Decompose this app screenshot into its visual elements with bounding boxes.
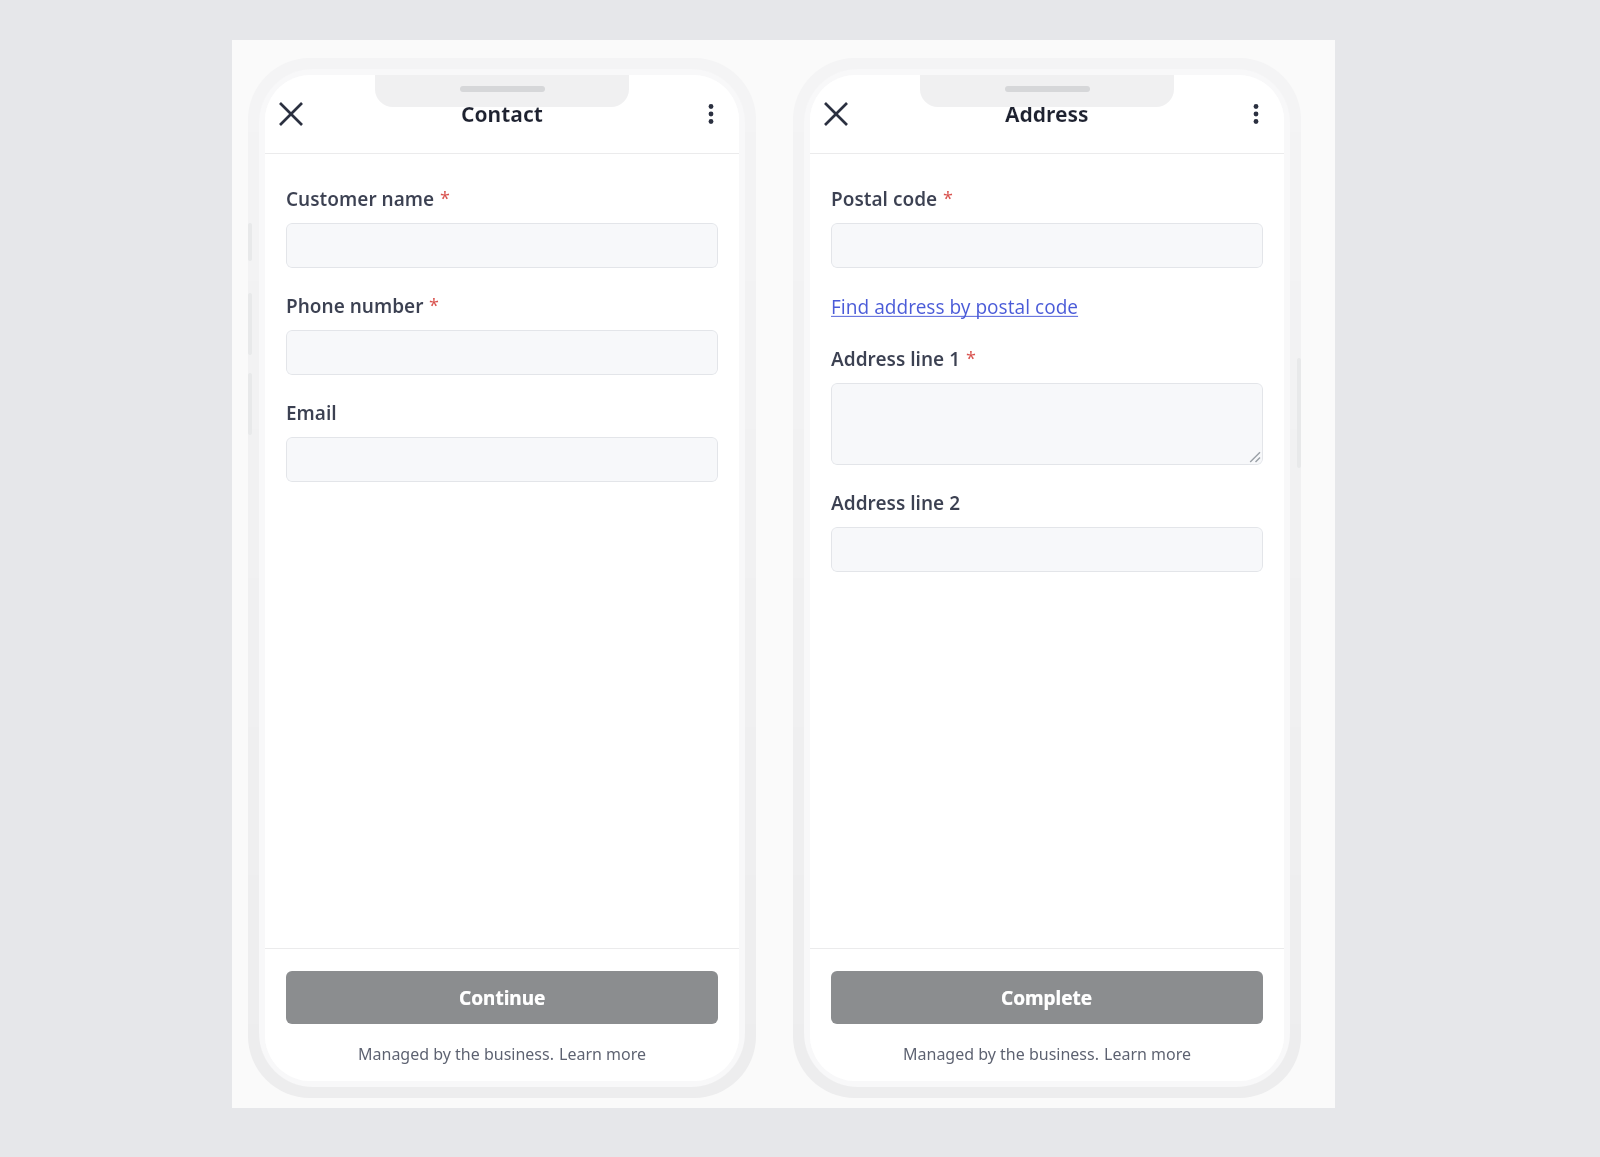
button[interactable]: More options [1234, 92, 1278, 136]
staticText: * [429, 293, 439, 318]
button[interactable]: Learn more [1104, 1043, 1191, 1065]
staticText: Complete [1001, 985, 1093, 1011]
button[interactable] [286, 223, 718, 268]
button[interactable]: Close [814, 92, 858, 136]
staticText: Managed by the business. [903, 1043, 1104, 1065]
button[interactable] [286, 330, 718, 375]
button[interactable]: Learn more [559, 1043, 646, 1065]
staticText: * [943, 186, 953, 211]
button[interactable] [286, 437, 718, 482]
staticText: Find address by postal code [831, 294, 1079, 320]
staticText: * [440, 186, 450, 211]
staticText: * [966, 346, 976, 371]
staticText: Address [1005, 100, 1089, 129]
button[interactable]: Close [269, 92, 313, 136]
button[interactable]: Find address by postal code [831, 294, 1079, 320]
button[interactable]: Complete [831, 971, 1263, 1024]
staticText: Address line 2 [831, 490, 961, 516]
staticText: Address line 1 [831, 346, 961, 372]
button[interactable] [831, 223, 1263, 268]
button[interactable] [831, 383, 1263, 465]
staticText: Customer name [286, 186, 435, 212]
staticText: Contact [461, 100, 543, 129]
staticText: Managed by the business. [358, 1043, 559, 1065]
button[interactable] [831, 527, 1263, 572]
staticText: Continue [459, 985, 546, 1011]
staticText: Email [286, 400, 337, 426]
button[interactable]: Continue [286, 971, 718, 1024]
staticText: Phone number [286, 293, 424, 319]
button[interactable]: More options [689, 92, 733, 136]
staticText: Postal code [831, 186, 938, 212]
